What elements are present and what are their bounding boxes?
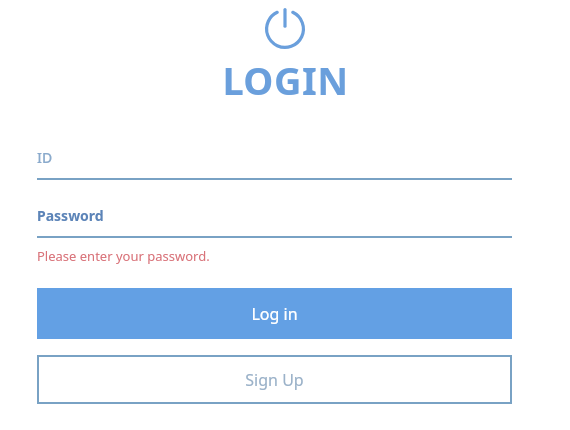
button[interactable]: Log in (37, 288, 512, 339)
other: Power (262, 6, 308, 52)
button[interactable]: Sign Up (37, 355, 512, 404)
staticText: LOGIN (222, 54, 349, 106)
staticText: ID (37, 148, 53, 167)
staticText: Sign Up (245, 369, 304, 391)
button[interactable]: Password (37, 202, 512, 238)
button[interactable]: ID (37, 144, 512, 180)
staticText: Password (37, 206, 104, 225)
staticText: Please enter your password. (37, 247, 210, 265)
staticText: Log in (251, 303, 298, 325)
